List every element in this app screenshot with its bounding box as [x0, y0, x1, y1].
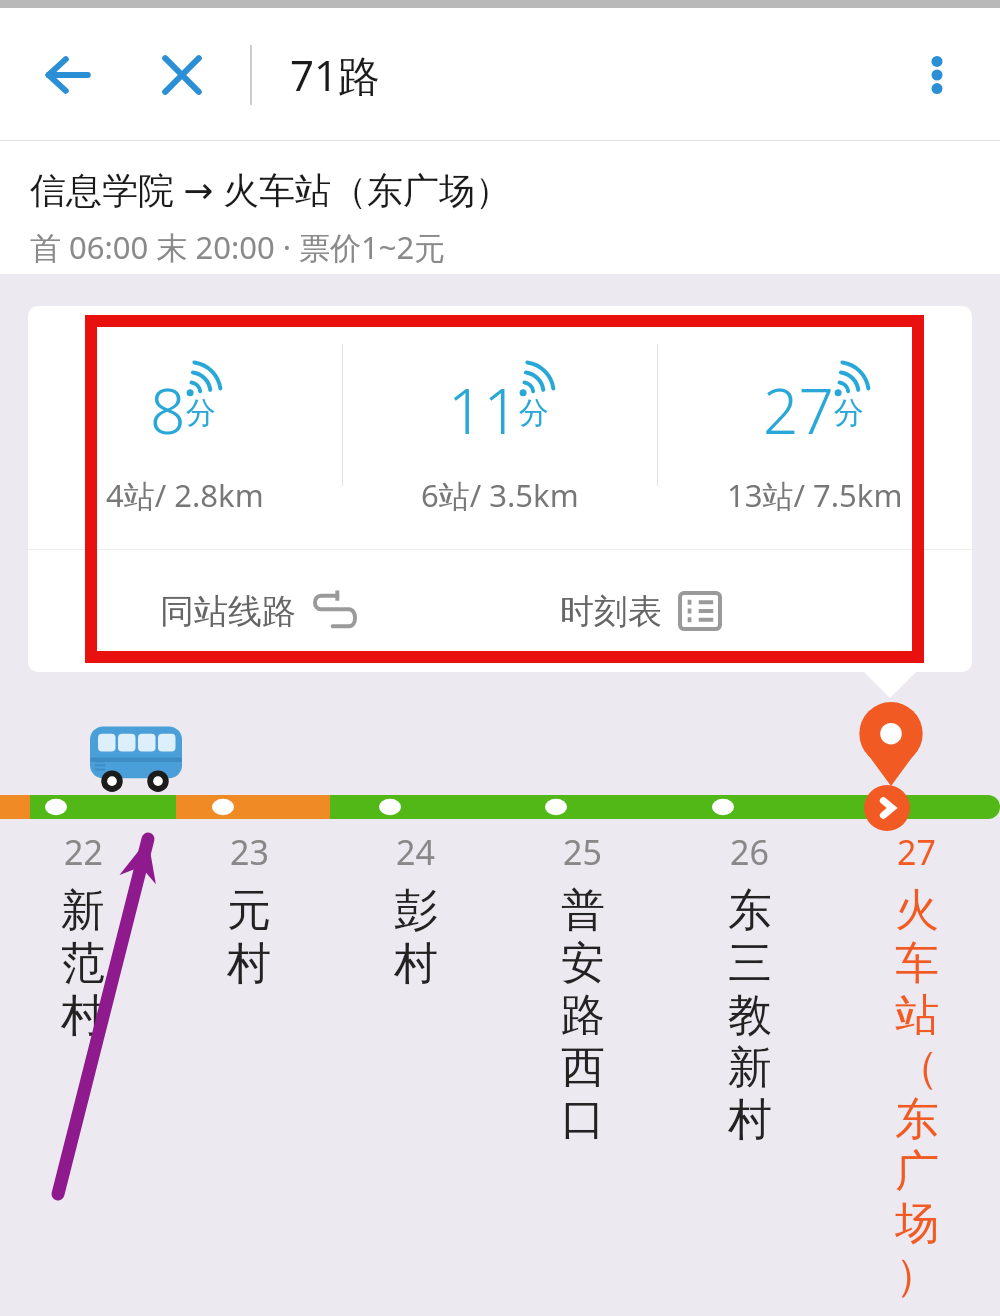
button[interactable]: 11 — [343, 306, 657, 549]
staticText: 4站/ 2.8km — [106, 474, 264, 516]
staticText: 分 — [519, 394, 549, 432]
button[interactable]: Back — [36, 43, 100, 107]
staticText: 火 车 站 （ 东 广 场 ） — [895, 883, 939, 1303]
button[interactable]: 22 — [0, 829, 166, 1043]
staticText: 26 — [730, 829, 769, 875]
staticText: 27 — [897, 829, 936, 875]
button[interactable]: More options — [902, 40, 972, 110]
staticText: 23 — [230, 829, 269, 875]
staticText: 分 — [186, 394, 216, 432]
staticText: 普 安 路 西 口 — [561, 883, 605, 1147]
button[interactable]: 24 — [332, 829, 499, 991]
button[interactable]: 时刻表 — [560, 550, 972, 672]
button[interactable]: 8 — [28, 306, 342, 549]
button[interactable]: 26 — [666, 829, 833, 1147]
staticText: 22 — [64, 829, 103, 875]
staticText: 同站线路 — [160, 590, 296, 633]
button[interactable]: 27 — [658, 306, 972, 549]
button[interactable]: 同站线路 — [160, 550, 500, 672]
staticText: 分 — [834, 394, 864, 432]
staticText: 彭 村 — [394, 883, 438, 991]
staticText: 信息学院 → 火车站（东广场） — [30, 165, 511, 214]
staticText: 11 — [448, 368, 519, 452]
staticText: 6站/ 3.5km — [421, 474, 579, 516]
button[interactable]: 25 — [499, 829, 666, 1147]
staticText: 27 — [763, 368, 834, 452]
staticText: 71路 — [290, 46, 381, 103]
staticText: 时刻表 — [560, 590, 662, 633]
button[interactable]: Close — [150, 43, 214, 107]
staticText: 8 — [150, 368, 186, 452]
staticText: 东 三 教 新 村 — [728, 883, 772, 1147]
button[interactable]: 23 — [166, 829, 332, 991]
staticText: 元 村 — [227, 883, 271, 991]
staticText: 13站/ 7.5km — [727, 474, 903, 516]
button[interactable]: 27 — [833, 829, 1000, 1303]
staticText: 25 — [563, 829, 602, 875]
staticText: 24 — [396, 829, 435, 875]
staticText: 首 06:00 末 20:00 · 票价1~2元 — [30, 226, 446, 268]
staticText: 新 范 村 — [61, 883, 105, 1043]
